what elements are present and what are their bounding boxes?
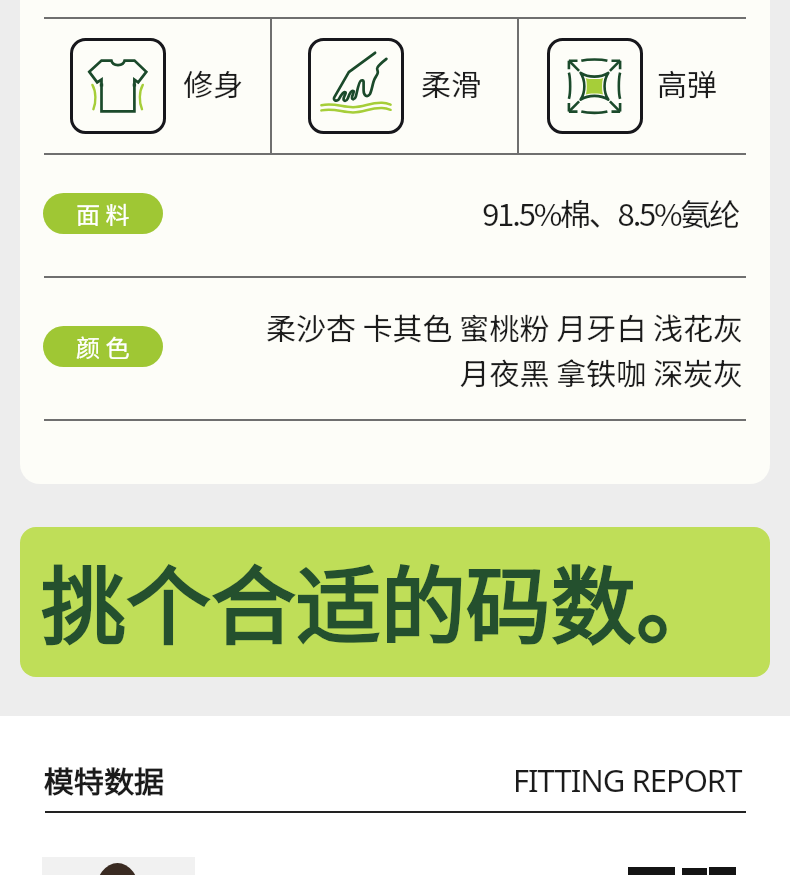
button[interactable]: [628, 866, 738, 875]
staticText: FITTING REPORT: [513, 759, 742, 801]
staticText: 颜 色: [76, 329, 130, 364]
button[interactable]: [42, 857, 195, 875]
button[interactable]: [44, 19, 280, 153]
staticText: 高弹: [657, 61, 717, 104]
staticText: 柔沙杏 卡其色 蜜桃粉 月牙白 浅花灰 月夜黑 拿铁咖 深炭灰: [233, 305, 743, 394]
button[interactable]: 颜 色: [43, 326, 163, 367]
other: 高弹 high stretch: [547, 38, 643, 134]
button[interactable]: 挑个合适的码数。: [20, 527, 770, 677]
button[interactable]: [282, 19, 518, 153]
staticText: 挑个合适的码数。: [41, 538, 722, 661]
staticText: 柔滑: [421, 61, 481, 104]
other: 柔滑 soft touch: [308, 38, 404, 134]
button[interactable]: [521, 19, 757, 153]
staticText: 面 料: [76, 196, 130, 231]
staticText: 91.5%棉、8.5%氨纶: [458, 190, 738, 235]
button[interactable]: 面 料: [43, 193, 163, 234]
other: 修身 slim fit: [70, 38, 166, 134]
staticText: 修身: [183, 61, 243, 104]
staticText: 模特数据: [44, 758, 164, 801]
